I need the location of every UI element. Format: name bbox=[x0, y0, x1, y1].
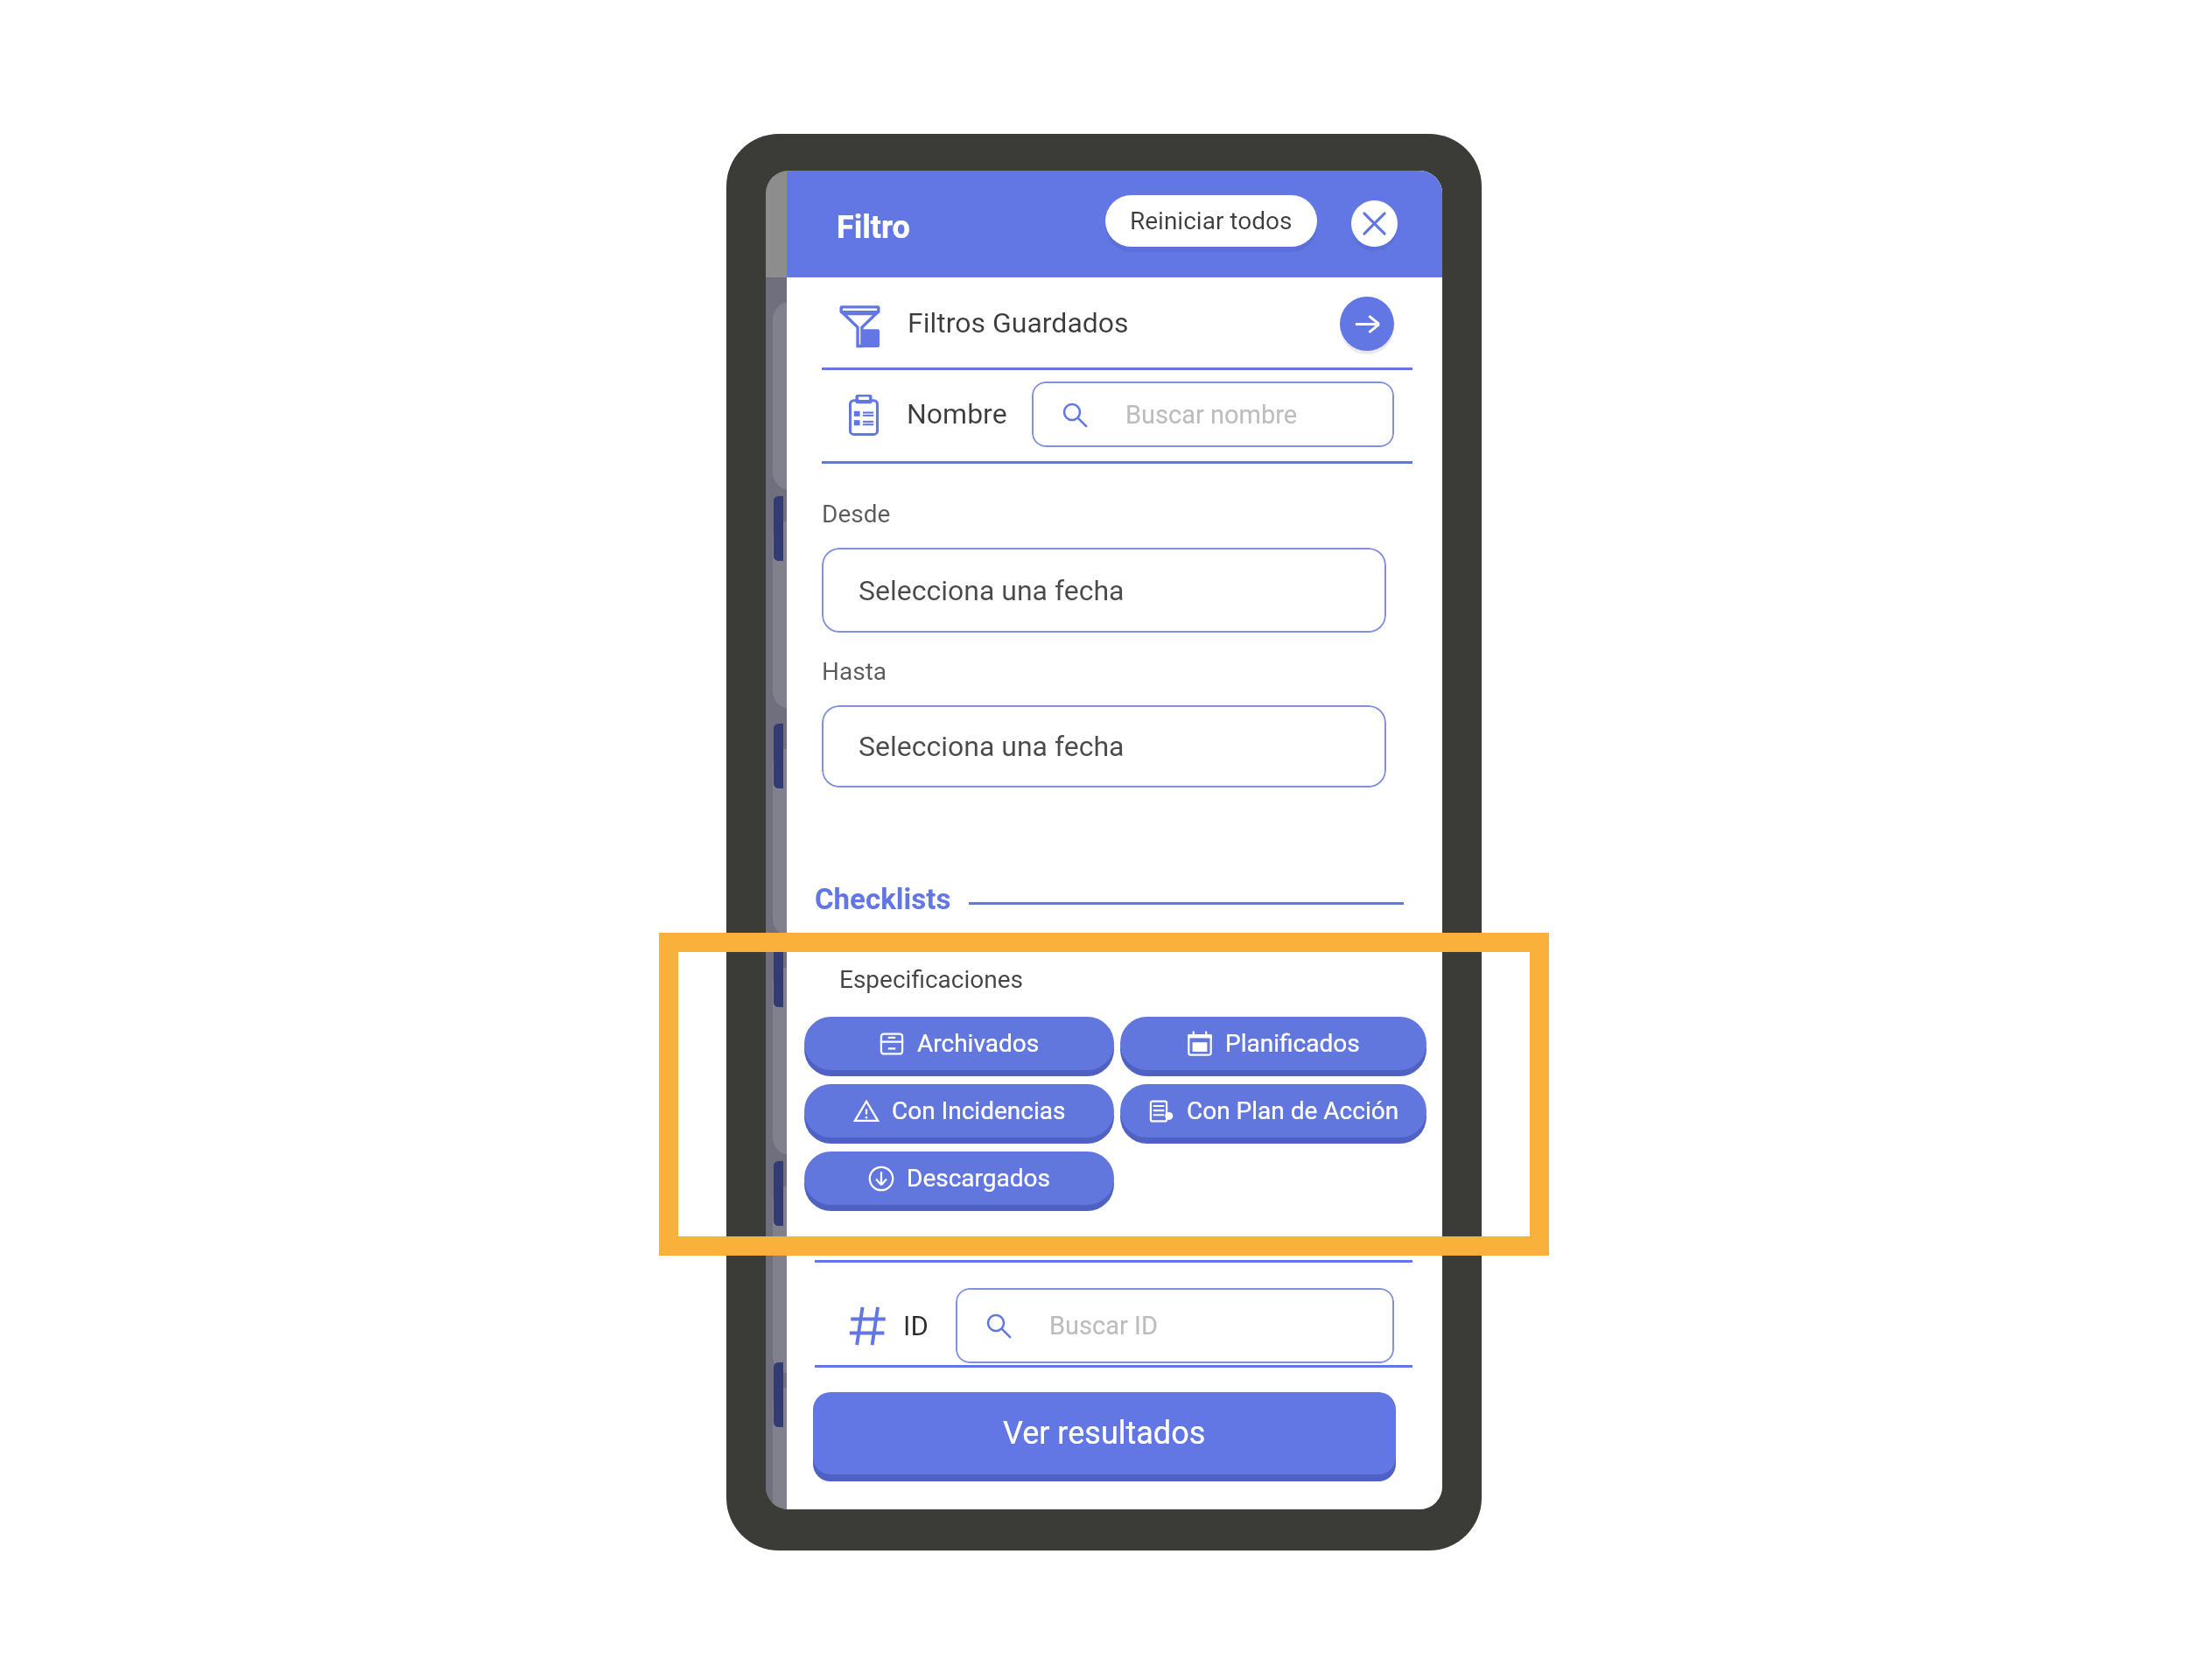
button[interactable]: Buscar nombre bbox=[1032, 381, 1394, 447]
staticText: Con Incidencias bbox=[892, 1096, 1066, 1125]
staticText: ID bbox=[903, 1310, 929, 1341]
staticText: Reiniciar todos bbox=[1130, 206, 1293, 235]
staticText: Con Plan de Acción bbox=[1187, 1096, 1399, 1125]
staticText: Filtros Guardados bbox=[908, 306, 1129, 339]
staticText: Descargados bbox=[907, 1164, 1050, 1193]
staticText: Archivados bbox=[917, 1029, 1040, 1058]
staticText: Buscar ID bbox=[1049, 1311, 1158, 1340]
staticText: Ver resultados bbox=[1003, 1415, 1206, 1452]
button[interactable]: Con Incidencias bbox=[804, 1084, 1114, 1137]
staticText: Checklists bbox=[815, 882, 951, 916]
button[interactable]: Selecciona una fecha bbox=[822, 548, 1386, 633]
staticText: Selecciona una fecha bbox=[859, 730, 1125, 763]
button[interactable]: Reiniciar todos bbox=[1105, 195, 1317, 247]
button[interactable]: Archivados bbox=[804, 1017, 1114, 1070]
staticText: Hasta bbox=[822, 657, 887, 686]
staticText: Filtro bbox=[837, 209, 910, 246]
button[interactable]: Selecciona una fecha bbox=[822, 705, 1386, 787]
staticText: Selecciona una fecha bbox=[859, 574, 1125, 607]
staticText: Planificados bbox=[1225, 1029, 1360, 1058]
button[interactable]: Abrir filtros guardados bbox=[1340, 297, 1394, 351]
button[interactable]: Buscar ID bbox=[956, 1288, 1394, 1363]
button[interactable] bbox=[822, 282, 1412, 367]
button[interactable]: Con Plan de Acción bbox=[1120, 1084, 1426, 1137]
button[interactable]: Cerrar bbox=[1351, 200, 1398, 247]
button[interactable]: Ver resultados bbox=[813, 1392, 1396, 1474]
button[interactable]: Planificados bbox=[1120, 1017, 1426, 1070]
button[interactable]: Descargados bbox=[804, 1151, 1114, 1205]
staticText: Nombre bbox=[907, 397, 1007, 430]
staticText: Buscar nombre bbox=[1125, 400, 1298, 430]
staticText: Desde bbox=[822, 500, 891, 528]
staticText: Especificaciones bbox=[839, 965, 1023, 994]
